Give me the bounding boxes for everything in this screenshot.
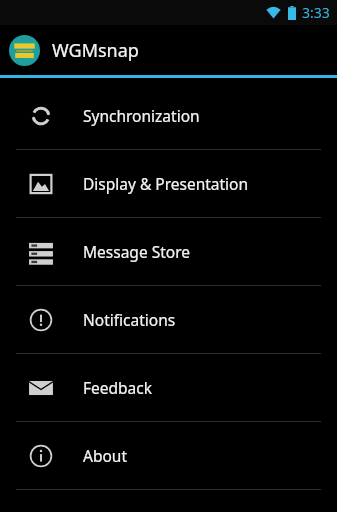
- staticText: Notifications: [83, 309, 176, 330]
- staticText: Feedback: [83, 377, 153, 398]
- staticText: 3:33: [302, 3, 330, 22]
- button[interactable]: Notifications: [0, 286, 337, 353]
- staticText: Synchronization: [83, 105, 200, 126]
- button[interactable]: WGMsnap app icon: [0, 25, 337, 75]
- button[interactable]: Message Store: [0, 218, 337, 285]
- other: Wi-Fi signal: [266, 7, 281, 19]
- staticText: Message Store: [83, 241, 190, 262]
- staticText: WGMsnap: [52, 38, 139, 63]
- button[interactable]: Display & Presentation: [0, 150, 337, 217]
- button[interactable]: About: [0, 422, 337, 489]
- button[interactable]: Feedback: [0, 354, 337, 421]
- other: WGMsnap app icon: [9, 35, 40, 66]
- staticText: Display & Presentation: [83, 173, 249, 194]
- other: Battery: [288, 6, 296, 20]
- staticText: About: [83, 445, 127, 466]
- button[interactable]: Synchronization: [0, 82, 337, 149]
